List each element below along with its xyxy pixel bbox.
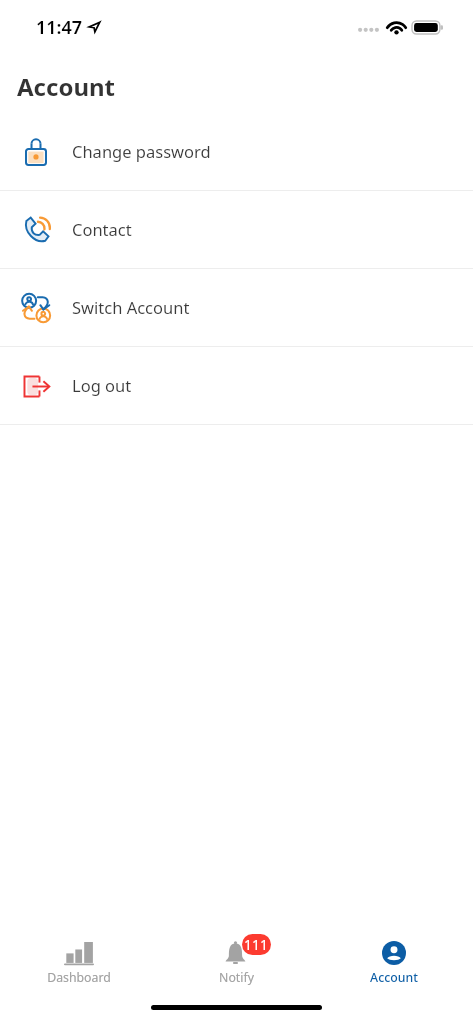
staticText: Notify [219, 969, 254, 986]
staticText: Account [370, 969, 418, 986]
staticText: Account [17, 70, 115, 103]
staticText: 111 [244, 935, 269, 954]
staticText: Dashboard [47, 969, 111, 986]
button[interactable]: Switch Account [0, 269, 473, 346]
button[interactable]: Contact [0, 191, 473, 268]
button[interactable]: Account [315, 930, 473, 990]
button[interactable]: Change password [0, 113, 473, 190]
staticText: 11:47 [36, 15, 83, 40]
button[interactable]: Log out [0, 347, 473, 424]
staticText: Log out [72, 374, 132, 396]
staticText: Change password [72, 140, 211, 162]
staticText: Contact [72, 218, 132, 240]
button[interactable]: Notify [157, 930, 315, 990]
staticText: Switch Account [72, 296, 190, 318]
button[interactable]: Dashboard [0, 930, 157, 990]
